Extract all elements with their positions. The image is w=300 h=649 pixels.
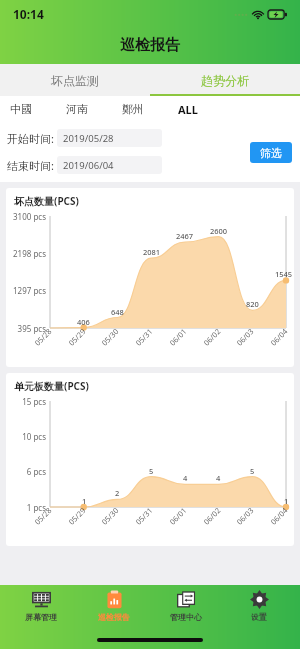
staticText: 06/04 — [268, 326, 290, 348]
staticText: 05/28 — [32, 505, 54, 527]
staticText: 3100 pcs — [6, 211, 46, 222]
staticText: 06/02 — [201, 505, 223, 527]
staticText: 395 pcs — [6, 323, 46, 334]
staticText: 筛选 — [260, 146, 282, 160]
staticText: 1545 — [275, 269, 293, 279]
staticText: 06/02 — [201, 326, 223, 348]
staticText: 05/29 — [66, 326, 88, 348]
staticText: 巡检报告 — [120, 36, 180, 55]
staticText: 05/28 — [32, 326, 54, 348]
button[interactable]: 中國 — [10, 102, 66, 116]
button[interactable]: 屏幕管理 — [9, 585, 73, 631]
staticText: 820 — [246, 299, 259, 309]
staticText: 2198 pcs — [6, 248, 46, 259]
button[interactable]: 2019/05/28 — [57, 129, 162, 147]
staticText: 屏幕管理 — [25, 612, 57, 622]
button[interactable]: ALL — [178, 102, 198, 117]
staticText: ALL — [178, 102, 198, 117]
staticText: 管理中心 — [170, 612, 202, 622]
button[interactable]: 筛选 — [250, 142, 292, 163]
staticText: 1297 pcs — [6, 285, 46, 296]
staticText: 开始时间: — [7, 131, 54, 146]
staticText: 2019/05/28 — [63, 132, 114, 145]
staticText: 巡检报告 — [98, 612, 130, 622]
staticText: 结束时间: — [7, 158, 54, 173]
staticText: 05/31 — [133, 326, 155, 348]
staticText: 06/03 — [234, 326, 256, 348]
staticText: 1 — [82, 496, 87, 506]
staticText: 2081 — [143, 247, 161, 257]
button[interactable]: 河南 — [66, 102, 122, 116]
staticText: 1 — [284, 496, 289, 506]
staticText: 6 pcs — [6, 466, 46, 477]
staticText: 06/03 — [234, 505, 256, 527]
staticText: 06/01 — [167, 326, 189, 348]
staticText: 2600 — [210, 226, 228, 236]
staticText: 5 — [149, 466, 154, 476]
staticText: 648 — [111, 307, 124, 317]
staticText: 05/30 — [99, 505, 121, 527]
staticText: 设置 — [251, 612, 267, 622]
staticText: 10 pcs — [6, 431, 46, 442]
staticText: 河南 — [66, 102, 88, 116]
button[interactable]: 设置 — [227, 585, 291, 631]
button[interactable]: 2019/06/04 — [57, 156, 162, 174]
staticText: 2 — [115, 488, 120, 498]
button[interactable]: 巡检报告 — [82, 585, 146, 631]
staticText: 1 pcs — [6, 502, 46, 513]
staticText: 坏点监测 — [51, 73, 99, 88]
staticText: 406 — [77, 317, 90, 327]
staticText: 06/01 — [167, 505, 189, 527]
staticText: 坏点数量(PCS) — [14, 194, 79, 208]
staticText: 15 pcs — [6, 396, 46, 407]
staticText: 鄭州 — [122, 102, 144, 116]
staticText: 05/31 — [133, 505, 155, 527]
staticText: 06/04 — [268, 505, 290, 527]
staticText: 2019/06/04 — [63, 159, 114, 172]
button[interactable]: 管理中心 — [154, 585, 218, 631]
staticText: 4 — [216, 473, 221, 483]
staticText: 05/29 — [66, 505, 88, 527]
button[interactable]: 坏点监测 — [0, 64, 150, 96]
button[interactable]: 鄭州 — [122, 102, 178, 116]
staticText: 5 — [250, 466, 255, 476]
staticText: 单元板数量(PCS) — [14, 379, 89, 393]
staticText: 中國 — [10, 102, 32, 116]
staticText: 趋势分析 — [201, 73, 249, 88]
button[interactable]: 趋势分析 — [150, 64, 300, 96]
staticText: 05/30 — [99, 326, 121, 348]
staticText: 4 — [183, 473, 188, 483]
staticText: 10:14 — [13, 6, 44, 22]
staticText: 2467 — [176, 231, 194, 241]
